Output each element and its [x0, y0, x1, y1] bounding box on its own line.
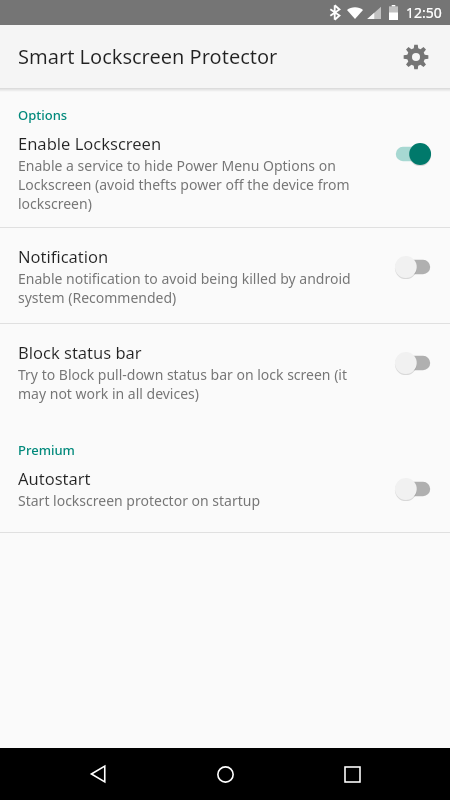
button[interactable]: Block status bar [0, 324, 450, 419]
button[interactable]: Notification [0, 228, 450, 323]
staticText: Enable Lockscreen [18, 132, 162, 154]
staticText: Try to Block pull-down status bar on loc… [18, 365, 378, 403]
button[interactable]: Settings [394, 35, 438, 79]
button[interactable]: Autostart off [390, 473, 436, 505]
button[interactable]: Block status bar off [390, 347, 436, 379]
staticText: 12:50 [406, 3, 442, 22]
staticText: Enable a service to hide Power Menu Opti… [18, 156, 378, 213]
staticText: Options [18, 106, 68, 124]
staticText: Autostart [18, 467, 91, 489]
staticText: Notification [18, 245, 109, 267]
staticText: Start lockscreen protector on startup [18, 491, 261, 510]
button[interactable]: Home [197, 748, 253, 800]
button[interactable]: Recents [324, 748, 380, 800]
button[interactable]: Enable Lockscreen [0, 124, 450, 227]
button[interactable]: Notification off [390, 251, 436, 283]
staticText: Block status bar [18, 341, 142, 363]
button[interactable]: Enable Lockscreen on [390, 138, 436, 170]
button[interactable]: Back [71, 748, 127, 800]
staticText: Premium [18, 441, 75, 459]
staticText: Smart Lockscreen Protector [18, 43, 278, 70]
button[interactable]: Autostart [0, 459, 450, 532]
staticText: Enable notification to avoid being kille… [18, 269, 378, 307]
